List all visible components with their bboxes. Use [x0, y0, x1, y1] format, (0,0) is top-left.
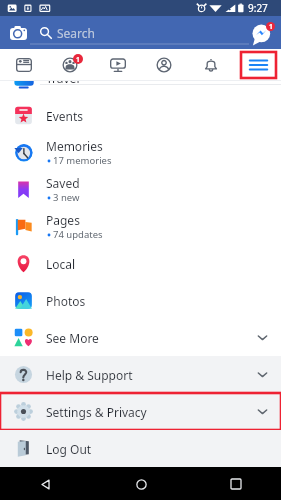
button[interactable]: Notifications: [195, 52, 227, 78]
button[interactable]: Recents: [225, 473, 247, 495]
button[interactable]: Friends: [54, 52, 86, 78]
button[interactable]: Messenger: [251, 21, 275, 45]
staticText: 74 updates: [53, 228, 103, 241]
button[interactable]: Watch: [102, 52, 134, 78]
staticText: Help & Support: [46, 367, 133, 383]
button[interactable]: Memories: [0, 134, 281, 171]
staticText: Photos: [46, 293, 86, 309]
button[interactable]: Search: [33, 16, 251, 49]
button[interactable]: Photos: [0, 282, 281, 319]
staticText: 9:27: [248, 1, 268, 15]
staticText: 1: [269, 22, 273, 31]
button[interactable]: Events: [0, 97, 281, 134]
button[interactable]: Log Out: [0, 430, 281, 467]
button[interactable]: Menu: [241, 52, 276, 78]
staticText: 1: [76, 55, 80, 64]
button[interactable]: Home: [130, 473, 152, 495]
staticText: Settings & Privacy: [46, 404, 147, 420]
staticText: Events: [46, 108, 84, 124]
button[interactable]: News Feed: [8, 52, 40, 78]
staticText: 17 memories: [53, 154, 112, 167]
button[interactable]: See More: [0, 319, 281, 356]
staticText: Pages: [46, 212, 80, 228]
button[interactable]: Profile: [148, 52, 180, 78]
staticText: Saved: [46, 175, 80, 191]
staticText: See More: [46, 330, 99, 346]
button[interactable]: Local: [0, 245, 281, 282]
button[interactable]: Camera: [10, 24, 27, 42]
staticText: 3 new: [53, 191, 80, 204]
staticText: Search: [57, 25, 95, 41]
staticText: Log Out: [46, 441, 92, 457]
staticText: Memories: [46, 138, 103, 154]
button[interactable]: Pages: [0, 208, 281, 245]
button[interactable]: Settings & Privacy: [0, 393, 281, 430]
button[interactable]: Help & Support: [0, 356, 281, 393]
staticText: Local: [46, 256, 76, 272]
staticText: Travel: [46, 81, 80, 86]
button[interactable]: Saved: [0, 171, 281, 208]
button[interactable]: Back: [34, 473, 56, 495]
